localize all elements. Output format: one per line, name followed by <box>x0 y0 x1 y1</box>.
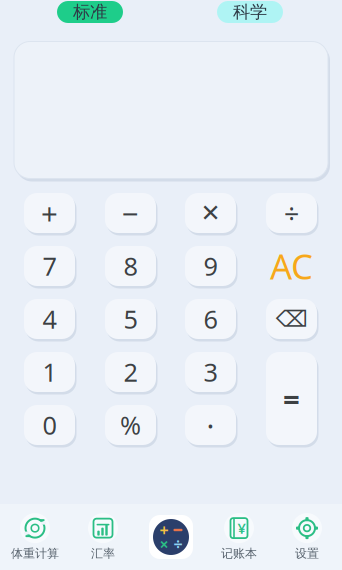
staticText: 7 <box>42 249 56 283</box>
button[interactable]: + <box>22 191 77 235</box>
button[interactable]: 1 <box>22 350 77 394</box>
button[interactable]: 汇率 <box>69 511 137 563</box>
staticText: + <box>159 519 168 541</box>
button[interactable]: 3 <box>183 350 238 394</box>
staticText: 标准 <box>73 1 107 23</box>
staticText: 9 <box>203 249 217 283</box>
button[interactable]: 5 <box>103 297 158 341</box>
staticText: 1 <box>42 355 56 389</box>
staticText: 记账本 <box>221 546 257 561</box>
button[interactable]: = <box>264 350 319 447</box>
button[interactable]: 7 <box>22 244 77 288</box>
staticText: 2 <box>123 355 137 389</box>
button[interactable]: AC <box>264 244 319 288</box>
staticText: 3 <box>203 355 217 389</box>
staticText: 科学 <box>233 1 267 23</box>
staticText: = <box>283 379 300 418</box>
staticText: 6 <box>203 302 217 336</box>
button[interactable]: 科学 <box>217 1 283 23</box>
button[interactable]: ÷ <box>264 191 319 235</box>
staticText: ⌫ <box>275 306 307 332</box>
button[interactable]: % <box>103 403 158 447</box>
button[interactable]: ✕ <box>183 191 238 235</box>
staticText: 汇率 <box>91 546 115 561</box>
staticText: − <box>122 193 139 232</box>
button[interactable]: 9 <box>183 244 238 288</box>
button[interactable]: · <box>183 403 238 447</box>
button[interactable]: 8 <box>103 244 158 288</box>
staticText: AC <box>270 243 313 289</box>
staticText: × <box>159 533 168 555</box>
button[interactable]: 计算器 <box>137 511 205 563</box>
staticText: · <box>206 405 214 444</box>
staticText: ¥ <box>237 518 245 538</box>
button[interactable]: ¥ <box>205 511 273 563</box>
staticText: % <box>120 408 141 442</box>
staticText: ✕ <box>200 199 220 227</box>
staticText: 设置 <box>295 546 319 561</box>
button[interactable]: 0 <box>22 403 77 447</box>
staticText: 体重计算 <box>11 546 59 561</box>
button[interactable]: ⌫ <box>264 297 319 341</box>
staticText: + <box>41 193 58 232</box>
button[interactable]: 6 <box>183 297 238 341</box>
staticText: ÷ <box>173 533 182 555</box>
button[interactable]: 2 <box>103 350 158 394</box>
staticText: ÷ <box>284 195 299 231</box>
staticText: 0 <box>42 408 56 442</box>
button[interactable]: 设置 <box>273 511 341 563</box>
staticText: 8 <box>123 249 137 283</box>
staticText: 4 <box>42 302 56 336</box>
button[interactable]: 体重计算 <box>1 511 69 563</box>
button[interactable]: 4 <box>22 297 77 341</box>
button[interactable]: 标准 <box>57 1 123 23</box>
button[interactable]: − <box>103 191 158 235</box>
staticText: 5 <box>123 302 137 336</box>
